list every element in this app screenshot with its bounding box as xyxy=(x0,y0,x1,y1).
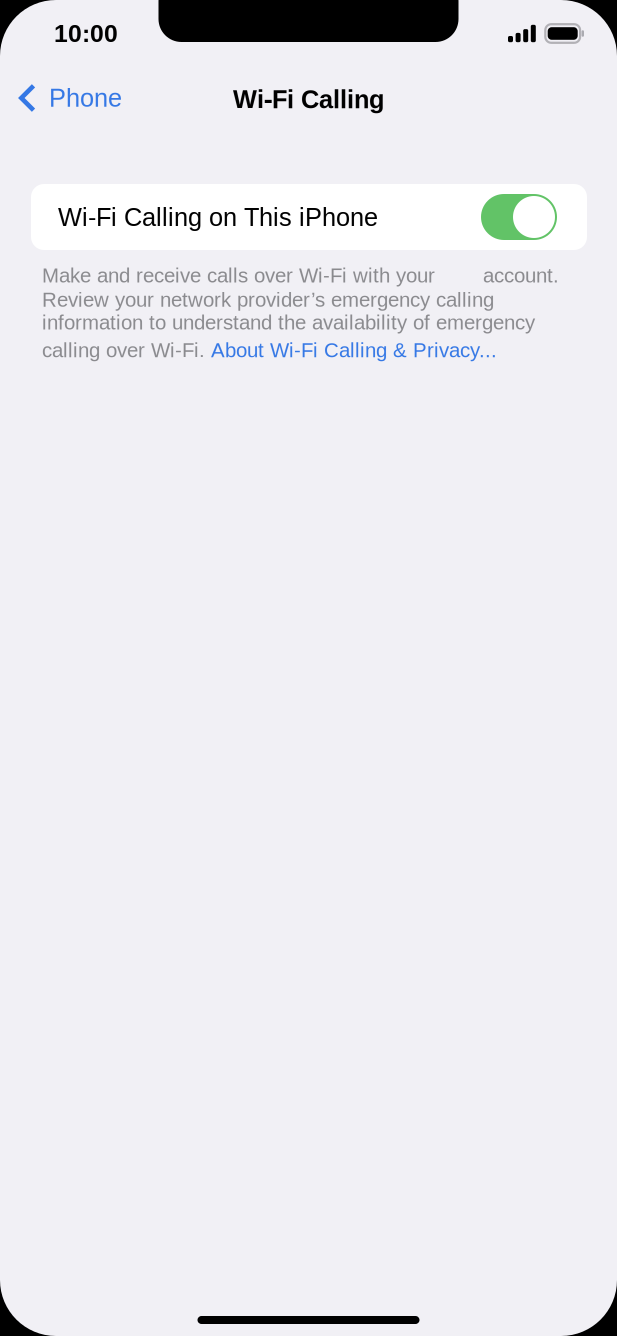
staticText: Wi‑Fi Calling on This iPhone xyxy=(58,197,378,233)
staticText: information to understand the availabili… xyxy=(42,311,535,334)
button[interactable]: Wi‑Fi Calling on This iPhone xyxy=(31,184,587,250)
staticText: Make and receive calls over Wi‑Fi with y… xyxy=(42,259,559,288)
staticText: Phone xyxy=(49,84,122,112)
staticText: Review your network provider’s emergency… xyxy=(42,288,494,311)
button[interactable]: Phone xyxy=(0,74,138,121)
staticText: 10:00 xyxy=(54,20,118,47)
staticText: calling over Wi‑Fi. xyxy=(42,334,211,363)
staticText: Wi‑Fi Calling xyxy=(233,80,384,116)
button[interactable]: About Wi‑Fi Calling & Privacy... xyxy=(211,334,497,363)
staticText: About Wi‑Fi Calling & Privacy... xyxy=(211,334,497,363)
